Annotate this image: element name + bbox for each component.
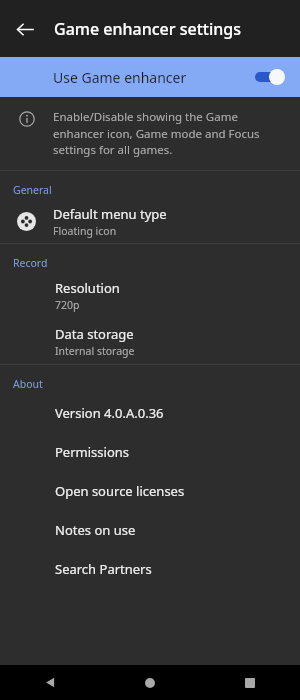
staticText: About xyxy=(13,377,43,391)
button[interactable]: Permissions xyxy=(0,432,300,471)
staticText: Resolution xyxy=(55,279,120,297)
staticText: Open source licenses xyxy=(55,482,185,500)
staticText: Use Game enhancer xyxy=(53,68,255,87)
button[interactable]: Open source licenses xyxy=(0,471,300,510)
staticText: General xyxy=(13,183,52,197)
button[interactable]: Home xyxy=(100,665,200,700)
button[interactable]: Search Partners xyxy=(0,549,300,588)
button[interactable]: Data storage xyxy=(0,318,300,364)
staticText: Game enhancer settings xyxy=(54,18,241,40)
staticText: Enable/Disable showing the Game enhancer… xyxy=(53,109,282,157)
staticText: 720p xyxy=(55,298,80,312)
staticText: Notes on use xyxy=(55,521,136,539)
staticText: Search Partners xyxy=(55,560,152,578)
button[interactable]: Recent apps xyxy=(200,665,300,700)
button[interactable]: Back xyxy=(6,10,44,48)
staticText: Data storage xyxy=(55,325,134,343)
staticText: Internal storage xyxy=(55,344,135,358)
button[interactable]: Default menu type xyxy=(0,199,300,243)
button[interactable]: Use Game enhancer xyxy=(0,57,300,97)
button[interactable]: Notes on use xyxy=(0,510,300,549)
button[interactable]: Resolution xyxy=(0,272,300,318)
staticText: Version 4.0.A.0.36 xyxy=(55,404,164,422)
staticText: Permissions xyxy=(55,443,130,461)
button[interactable]: Version 4.0.A.0.36 xyxy=(0,393,300,432)
button[interactable]: Back xyxy=(0,665,100,700)
staticText: Record xyxy=(13,256,48,270)
staticText: Floating icon xyxy=(53,224,117,238)
staticText: Default menu type xyxy=(53,205,167,223)
